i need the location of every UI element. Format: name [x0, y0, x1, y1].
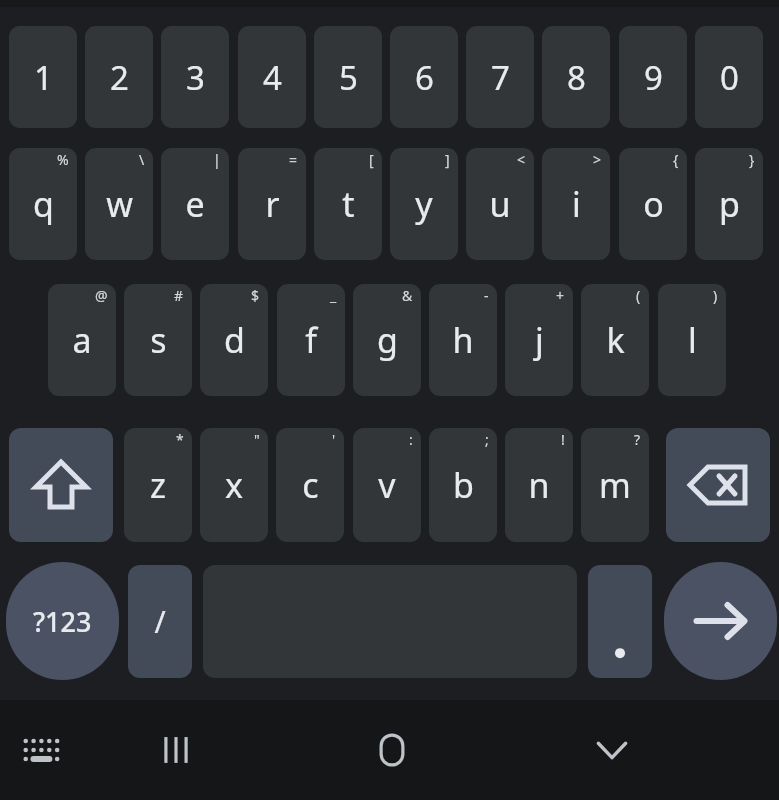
staticText: )	[713, 286, 718, 305]
button[interactable]: h	[429, 284, 497, 396]
staticText: !	[561, 430, 565, 449]
staticText: /	[154, 601, 166, 642]
button[interactable]: y	[390, 148, 458, 260]
button[interactable]	[588, 565, 652, 678]
staticText: b	[453, 462, 474, 508]
staticText: z	[150, 462, 166, 508]
staticText: o	[643, 181, 664, 227]
button[interactable]: a	[48, 284, 116, 396]
button[interactable]: ?123	[6, 562, 119, 680]
button[interactable]: 8	[542, 26, 610, 128]
staticText: \	[139, 150, 145, 169]
staticText: 0	[720, 55, 739, 100]
button[interactable]: Hide keyboard	[575, 712, 649, 788]
button[interactable]: o	[619, 148, 687, 260]
button[interactable]: 4	[238, 26, 306, 128]
staticText: w	[106, 181, 133, 227]
staticText: 7	[491, 55, 510, 100]
staticText: g	[377, 317, 398, 363]
button[interactable]: 6	[390, 26, 458, 128]
staticText: r	[265, 181, 280, 227]
staticText: "	[254, 430, 260, 449]
staticText: n	[528, 462, 550, 508]
staticText: $	[251, 286, 260, 305]
staticText: 9	[644, 55, 663, 100]
button[interactable]: d	[200, 284, 268, 396]
staticText: +	[556, 286, 565, 305]
staticText: m	[599, 462, 631, 508]
staticText: {	[673, 150, 679, 169]
button[interactable]: x	[200, 428, 268, 542]
button[interactable]: Switch keyboard	[8, 712, 78, 788]
staticText: 8	[567, 55, 586, 100]
button[interactable]: l	[658, 284, 726, 396]
staticText: t	[342, 181, 355, 227]
staticText: 2	[110, 55, 129, 100]
staticText: l	[688, 317, 697, 363]
button[interactable]: i	[542, 148, 610, 260]
button[interactable]: n	[505, 428, 573, 542]
button[interactable]: u	[466, 148, 534, 260]
button[interactable]: Shift	[9, 428, 113, 542]
button[interactable]: r	[238, 148, 306, 260]
button[interactable]: /	[128, 565, 192, 678]
button[interactable]: 3	[161, 26, 229, 128]
button[interactable]: Home	[355, 712, 429, 788]
button[interactable]: b	[429, 428, 497, 542]
button[interactable]: Enter	[664, 562, 777, 680]
staticText: 3	[186, 55, 205, 100]
button[interactable]: v	[353, 428, 421, 542]
staticText: *	[176, 430, 184, 449]
button[interactable]: g	[353, 284, 421, 396]
staticText: %	[57, 150, 69, 169]
button[interactable]: t	[314, 148, 382, 260]
staticText: (	[636, 286, 641, 305]
button[interactable]: Recents	[139, 712, 213, 788]
staticText: d	[224, 317, 245, 363]
button[interactable]: Backspace	[666, 428, 770, 542]
staticText: h	[452, 317, 474, 363]
staticText: :	[409, 430, 413, 449]
button[interactable]: s	[124, 284, 192, 396]
staticText: 5	[339, 55, 358, 100]
button[interactable]: 7	[466, 26, 534, 128]
staticText: a	[72, 317, 92, 363]
staticText: e	[185, 181, 205, 227]
button[interactable]: j	[505, 284, 573, 396]
staticText: s	[150, 317, 167, 363]
button[interactable]: 0	[695, 26, 763, 128]
staticText: f	[305, 317, 317, 363]
staticText: >	[593, 150, 602, 169]
staticText: @	[95, 286, 108, 305]
button[interactable]: k	[581, 284, 649, 396]
staticText: k	[606, 317, 625, 363]
button[interactable]: 9	[619, 26, 687, 128]
staticText: ]	[445, 150, 450, 169]
button[interactable]: f	[277, 284, 345, 396]
staticText: p	[719, 181, 740, 227]
staticText: u	[489, 181, 511, 227]
staticText: c	[302, 462, 319, 508]
staticText: _	[330, 286, 337, 305]
button[interactable]: m	[581, 428, 649, 542]
button[interactable]: p	[695, 148, 763, 260]
staticText: #	[174, 286, 184, 305]
staticText: |	[213, 150, 221, 169]
staticText: 6	[415, 55, 434, 100]
button[interactable]: z	[124, 428, 192, 542]
staticText: ;	[485, 430, 489, 449]
staticText: -	[484, 286, 489, 305]
staticText: j	[535, 317, 544, 363]
button[interactable]: q	[9, 148, 77, 260]
button[interactable]: 1	[9, 26, 77, 128]
button[interactable]: 2	[85, 26, 153, 128]
button[interactable]: e	[161, 148, 229, 260]
button[interactable]: w	[85, 148, 153, 260]
button[interactable]: c	[276, 428, 344, 542]
staticText: 4	[263, 55, 282, 100]
staticText: [	[369, 150, 374, 169]
staticText: '	[332, 430, 336, 449]
button[interactable]: 5	[314, 26, 382, 128]
staticText: &	[402, 286, 413, 305]
